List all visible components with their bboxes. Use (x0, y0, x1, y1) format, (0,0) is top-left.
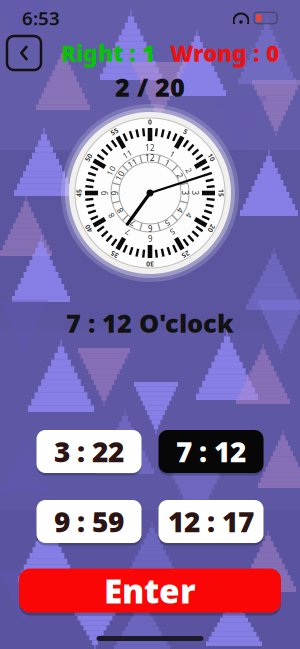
button[interactable]: Enter (19, 567, 281, 614)
staticText: 1 (147, 153, 152, 163)
staticText: 25 (146, 118, 154, 126)
button[interactable]: 3 : 22 (36, 429, 141, 474)
staticText: 7 : 12 O'clock (66, 306, 234, 340)
button[interactable]: 7 : 12 (158, 429, 263, 474)
staticText: 12 (145, 153, 155, 163)
staticText: 8 (147, 153, 152, 163)
button[interactable]: Back (7, 36, 41, 70)
staticText: Enter (104, 568, 196, 613)
staticText: 0 (148, 118, 152, 126)
staticText: 2 (147, 153, 152, 163)
staticText: 6 (147, 153, 152, 163)
staticText: 45 (146, 118, 154, 126)
staticText: 3 : 22 (54, 433, 124, 470)
staticText: 50 (146, 118, 154, 126)
staticText: 4 (147, 143, 152, 153)
staticText: 6:53 (22, 6, 60, 30)
staticText: 10 (145, 143, 155, 153)
staticText: 10 (145, 153, 155, 163)
staticText: 3 (147, 153, 152, 163)
staticText: 40 (146, 118, 154, 126)
staticText: 3 (147, 143, 152, 153)
staticText: 15 (146, 118, 154, 126)
staticText: 12 (145, 143, 155, 153)
staticText: 2 (147, 143, 152, 153)
staticText: 11 (145, 153, 155, 163)
staticText: 8 (147, 143, 152, 153)
staticText: 7 (147, 153, 152, 163)
staticText: 35 (146, 118, 154, 126)
staticText: 7 (147, 143, 152, 153)
staticText: 5 (148, 118, 152, 126)
staticText: Right : 1 (61, 38, 155, 68)
staticText: 6 (147, 143, 152, 153)
staticText: 9 (147, 153, 152, 163)
staticText: 11 (145, 143, 155, 153)
staticText: 20 (146, 118, 154, 126)
staticText: 9 (147, 143, 152, 153)
staticText: 30 (146, 118, 154, 126)
staticText: 55 (146, 118, 154, 126)
staticText: 5 (147, 153, 152, 163)
button[interactable]: 12 : 17 (158, 499, 263, 544)
staticText: 12 : 17 (168, 503, 254, 540)
staticText: 10 (146, 118, 154, 126)
staticText: 1 (147, 143, 152, 153)
staticText: 2 / 20 (115, 70, 185, 104)
staticText: 4 (147, 153, 152, 163)
button[interactable]: 9 : 59 (36, 499, 141, 544)
staticText: 5 (147, 143, 152, 153)
staticText: 7 : 12 (176, 433, 246, 470)
staticText: Wrong : 0 (170, 38, 279, 68)
staticText: 9 : 59 (54, 503, 124, 540)
